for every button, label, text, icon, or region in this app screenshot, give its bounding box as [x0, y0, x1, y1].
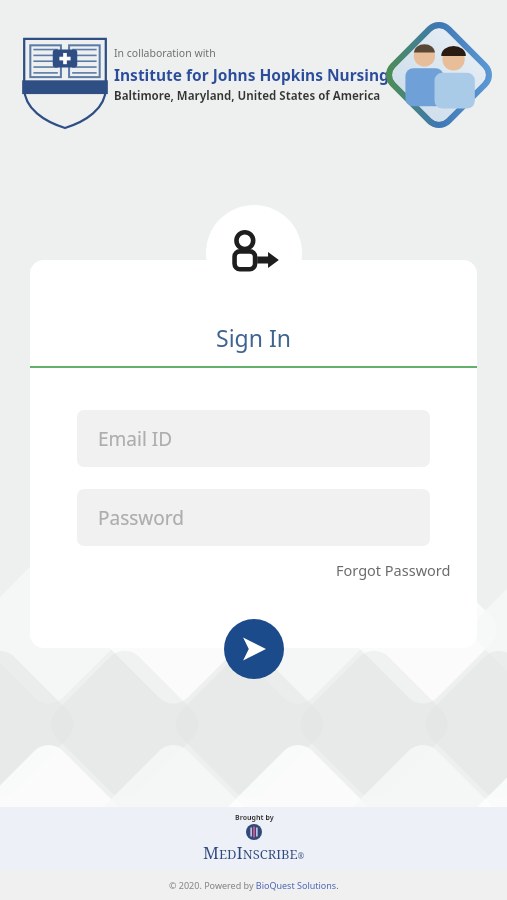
other: Sign in	[206, 205, 302, 301]
staticText: Email ID	[98, 426, 173, 452]
button[interactable]: Submit	[224, 619, 284, 679]
staticText: In collaboration with	[114, 46, 216, 60]
staticText: Institute for Johns Hopkins Nursing	[114, 64, 389, 85]
staticText: MEDINSCRIBE®	[203, 841, 305, 864]
staticText: Sign In	[216, 322, 291, 353]
button[interactable]: Forgot Password	[332, 556, 455, 584]
staticText: Password	[98, 505, 184, 531]
staticText: Forgot Password	[336, 560, 451, 580]
staticText: Brought by	[235, 813, 274, 823]
staticText: © 2020. Powered by BioQuest Solutions.	[169, 879, 339, 891]
button[interactable]: Password	[77, 489, 430, 546]
staticText: Baltimore, Maryland, United States of Am…	[114, 88, 381, 104]
button[interactable]: Email ID	[77, 410, 430, 467]
